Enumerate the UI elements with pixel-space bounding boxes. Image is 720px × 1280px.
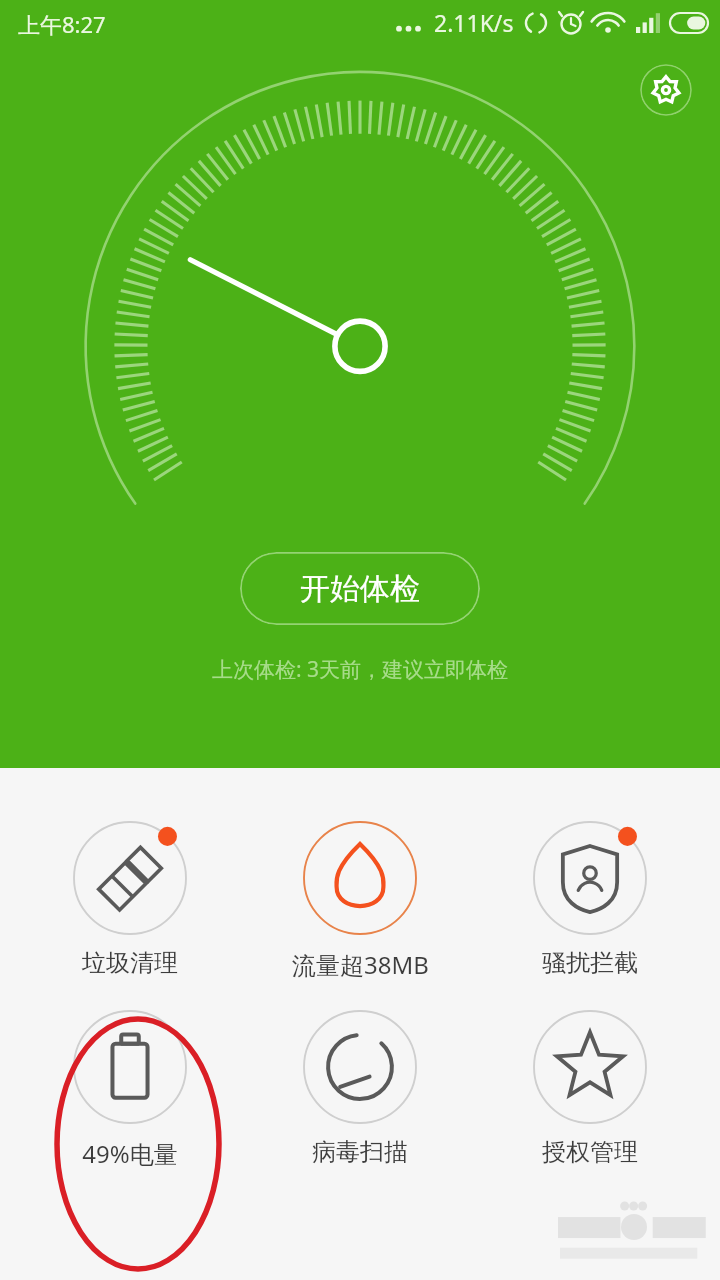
- button[interactable]: Settings: [640, 64, 692, 116]
- staticText: 流量超38MB: [292, 948, 429, 981]
- button[interactable]: 垃圾清理: [30, 820, 230, 978]
- staticText: 2.11K/s: [434, 7, 514, 38]
- staticText: 开始体检: [300, 570, 420, 608]
- button[interactable]: 49%电量: [30, 1009, 230, 1170]
- staticText: 垃圾清理: [82, 948, 178, 978]
- button[interactable]: 流量超38MB: [260, 820, 460, 981]
- staticText: 骚扰拦截: [542, 948, 638, 978]
- button[interactable]: 授权管理: [490, 1009, 690, 1167]
- button[interactable]: 骚扰拦截: [490, 820, 690, 978]
- button[interactable]: 开始体检: [240, 552, 480, 625]
- staticText: 49%电量: [82, 1137, 178, 1170]
- button[interactable]: 病毒扫描: [260, 1009, 460, 1167]
- staticText: 病毒扫描: [312, 1137, 408, 1167]
- staticText: 授权管理: [542, 1137, 638, 1167]
- staticText: 上次体检: 3天前，建议立即体检: [0, 655, 720, 684]
- staticText: 上午8:27: [18, 9, 106, 39]
